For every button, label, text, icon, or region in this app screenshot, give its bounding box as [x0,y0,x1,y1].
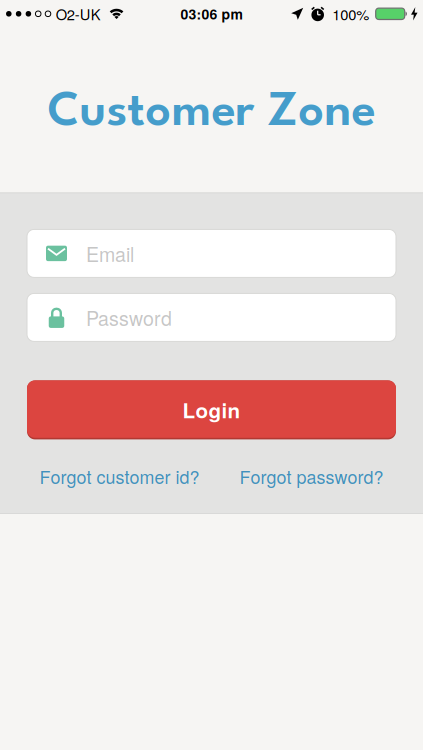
button[interactable]: Login [27,380,396,439]
staticText: Customer Zone [47,90,375,136]
button[interactable]: Forgot customer id? [39,463,199,489]
staticText: Forgot password? [239,463,383,489]
staticText: 100% [332,3,369,24]
button[interactable]: Email text field [27,229,396,277]
staticText: Forgot customer id? [39,463,199,489]
button[interactable]: Forgot password? [239,463,383,489]
staticText: 03:06 pm [180,4,242,24]
staticText: Email [86,239,134,267]
staticText: Login [182,395,240,425]
staticText: O2-UK [56,3,101,24]
staticText: Password [86,303,172,331]
button[interactable]: Password text field [27,293,396,341]
